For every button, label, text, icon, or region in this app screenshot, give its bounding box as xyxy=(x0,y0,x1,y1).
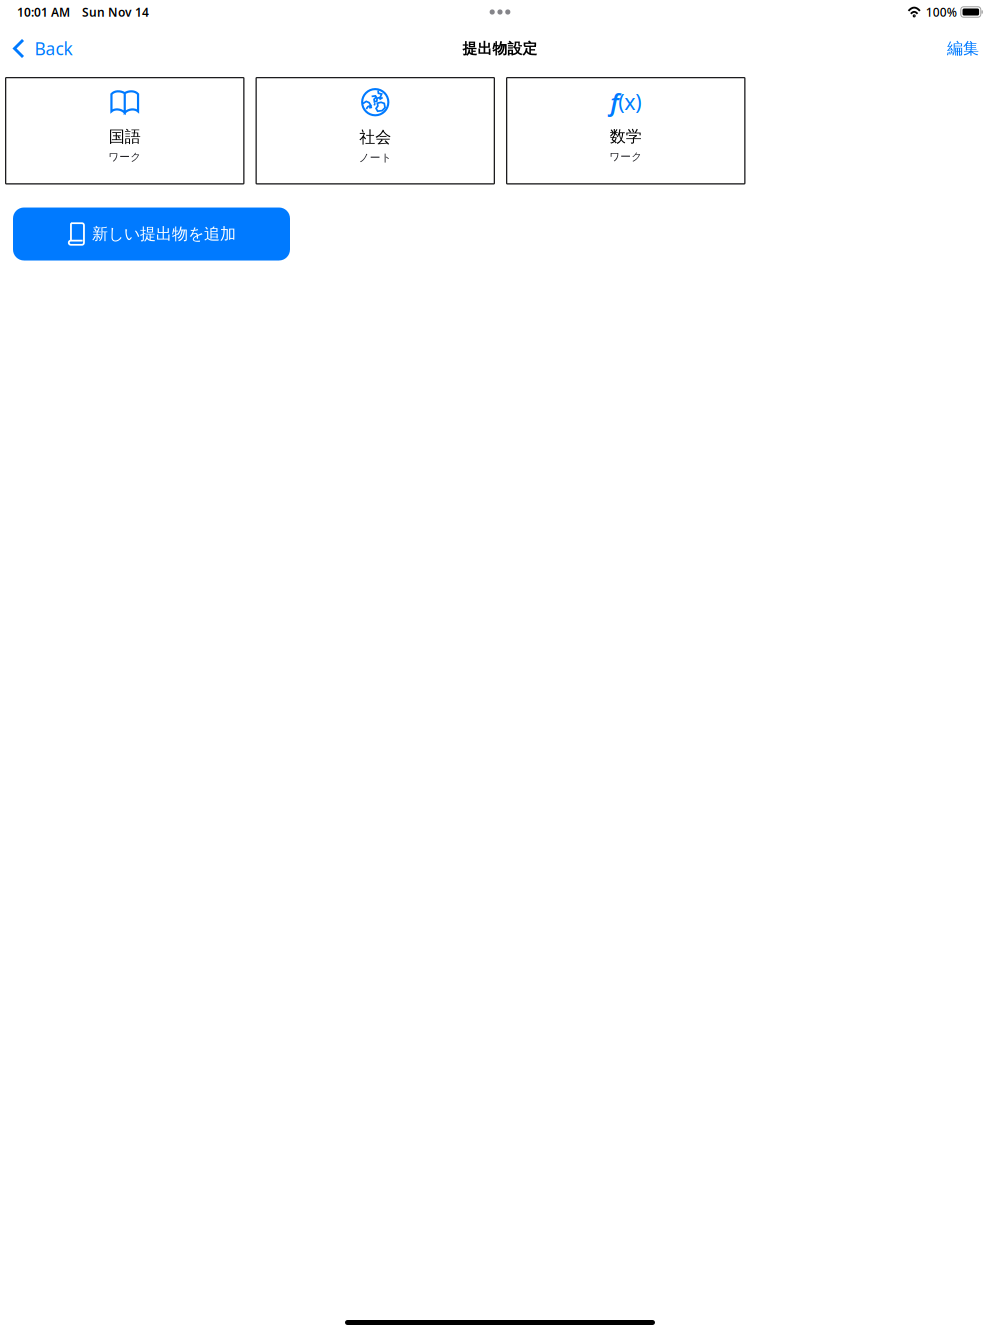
staticText: f xyxy=(610,86,618,118)
staticText: ワーク xyxy=(108,150,141,164)
button[interactable]: f xyxy=(506,77,745,184)
staticText: 提出物設定 xyxy=(462,39,537,57)
staticText: 編集 xyxy=(947,39,979,58)
staticText: 社会 xyxy=(359,127,391,147)
staticText: Back xyxy=(34,37,72,60)
button[interactable]: 国語 xyxy=(5,77,244,184)
staticText: Sun Nov 14 xyxy=(82,4,149,20)
staticText: 新しい提出物を追加 xyxy=(92,224,236,244)
staticText: 国語 xyxy=(109,127,141,146)
staticText: ワーク xyxy=(609,150,642,163)
staticText: (x) xyxy=(618,88,641,116)
button[interactable]: 社会 xyxy=(255,77,495,184)
button[interactable]: 編集 xyxy=(937,32,1000,65)
button[interactable]: Back xyxy=(0,30,82,67)
staticText: 数学 xyxy=(610,127,642,146)
staticText: 10:01 AM xyxy=(17,4,70,20)
button[interactable]: 新しい提出物を追加 xyxy=(13,207,290,260)
staticText: 100% xyxy=(926,4,957,20)
staticText: ノート xyxy=(359,151,392,164)
